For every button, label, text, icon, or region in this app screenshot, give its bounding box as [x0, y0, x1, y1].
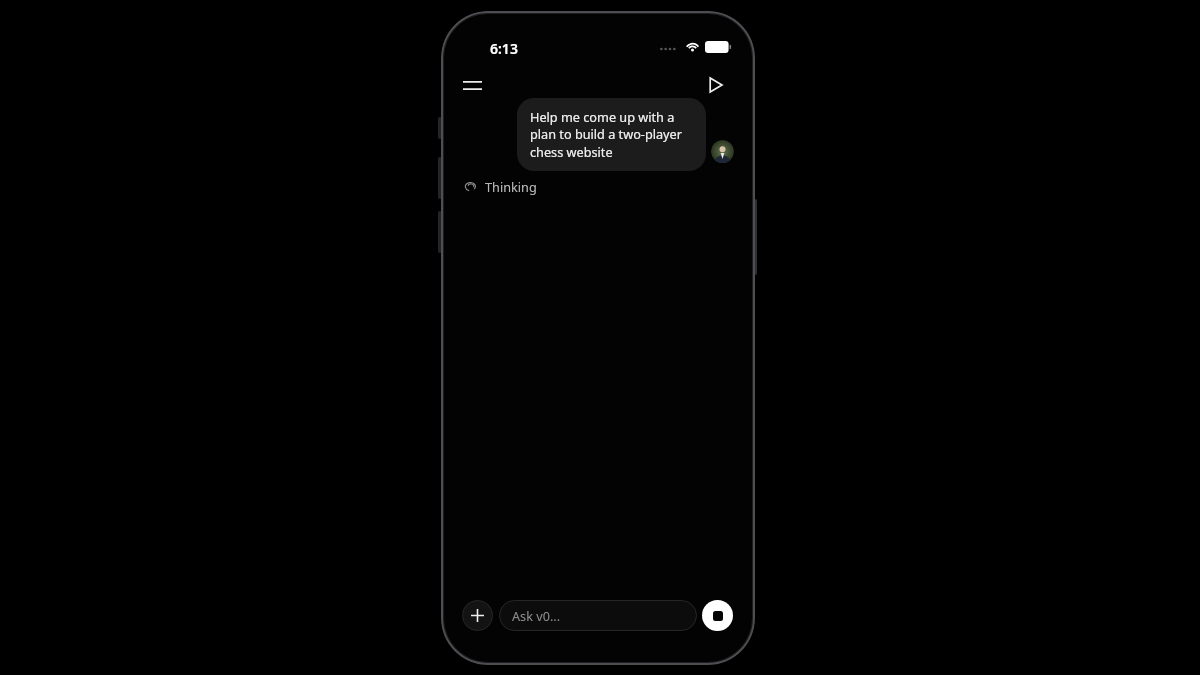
staticText: Ask v0... — [512, 607, 561, 624]
staticText: Thinking — [485, 178, 537, 195]
button[interactable]: Stop generating — [702, 600, 733, 631]
button[interactable]: Thinking — [458, 173, 543, 199]
staticText: Help me come up with a plan to build a t… — [530, 108, 693, 161]
button[interactable]: Add attachment — [462, 600, 493, 631]
button[interactable]: Help me come up with a plan to build a t… — [517, 98, 706, 171]
staticText: 6:13 — [490, 39, 518, 58]
button[interactable]: Ask v0... — [499, 600, 697, 631]
button[interactable]: Menu — [451, 64, 493, 106]
button[interactable]: Profile picture — [711, 140, 734, 163]
button[interactable]: Run preview — [695, 64, 737, 106]
